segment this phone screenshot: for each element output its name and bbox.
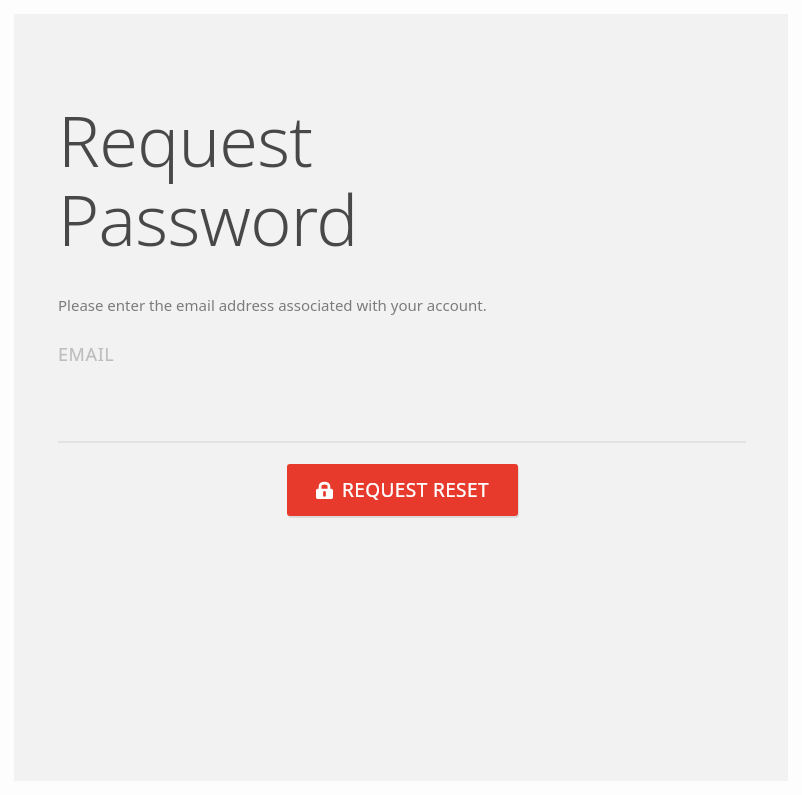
other: Lock (316, 482, 333, 499)
staticText: Please enter the email address associate… (58, 295, 550, 315)
staticText: EMAIL (58, 342, 115, 367)
staticText: Request Password (58, 92, 358, 267)
staticText: REQUEST RESET (342, 477, 489, 503)
button[interactable]: Lock (287, 464, 518, 516)
button[interactable]: EMAIL (58, 337, 746, 371)
